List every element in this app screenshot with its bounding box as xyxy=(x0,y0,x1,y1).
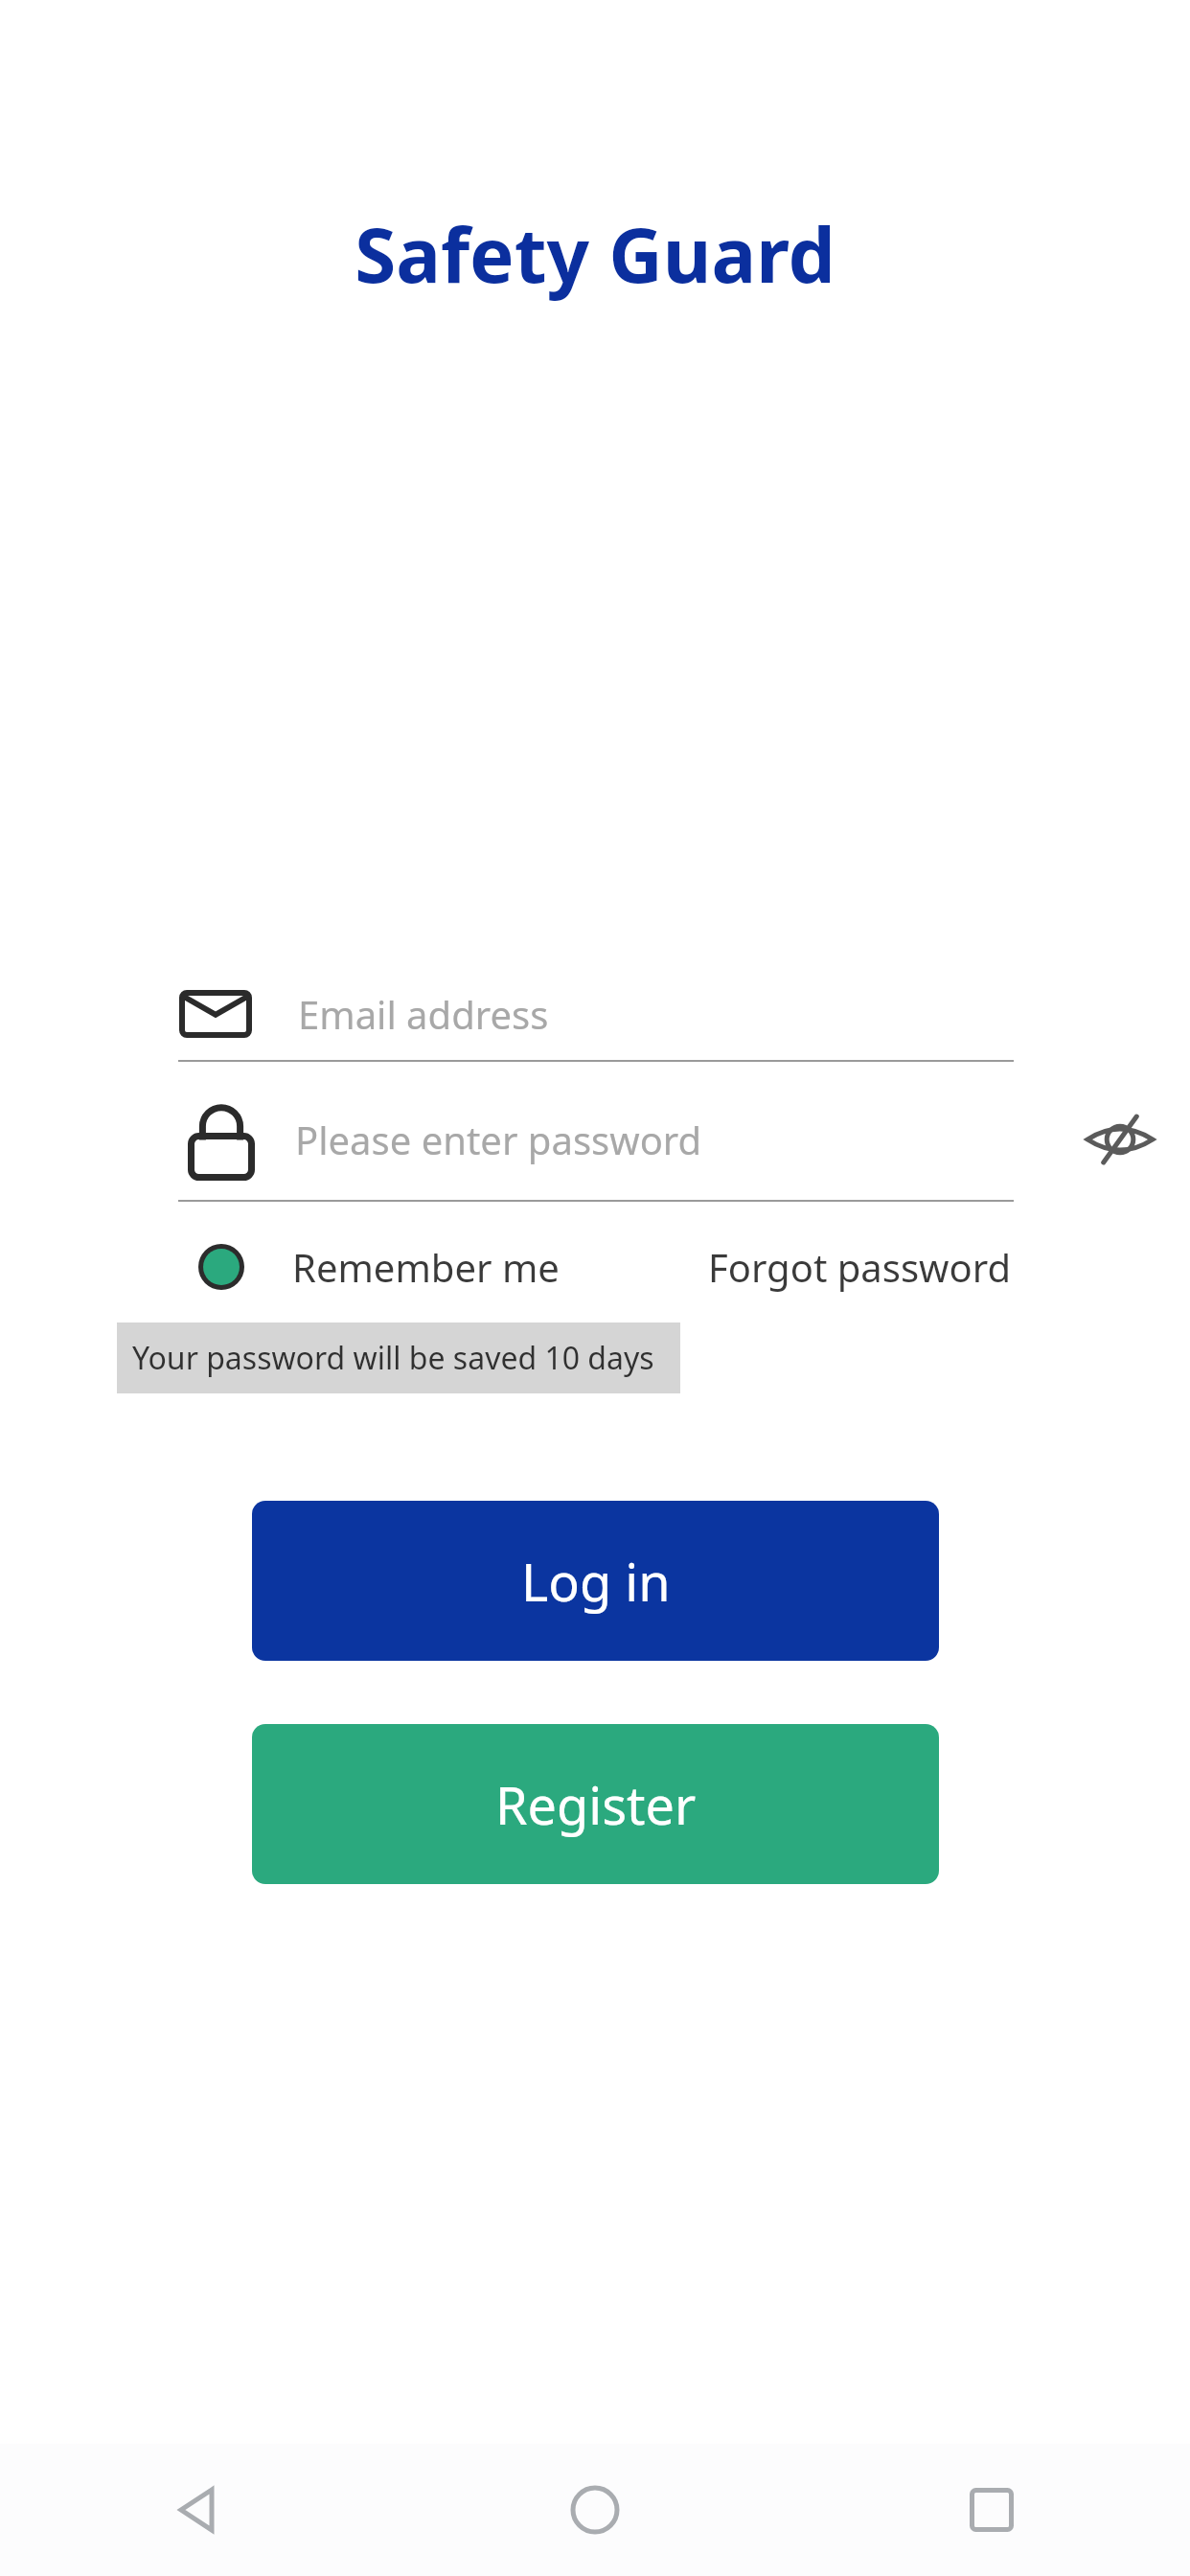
button[interactable]: Back xyxy=(0,2444,397,2576)
button[interactable]: Show password xyxy=(1067,1087,1173,1192)
staticText: Forgot password xyxy=(708,1241,1012,1293)
staticText: Safety Guard xyxy=(0,203,1190,305)
button[interactable]: Register xyxy=(252,1724,939,1884)
staticText: Email address xyxy=(298,988,549,1040)
button[interactable]: Log in xyxy=(252,1501,939,1661)
button[interactable]: Recent apps xyxy=(793,2444,1190,2576)
button[interactable]: Remember me xyxy=(0,1229,560,1305)
button[interactable]: Please enter password xyxy=(0,1079,1190,1200)
staticText: Register xyxy=(495,1769,697,1840)
button[interactable]: Forgot password xyxy=(708,1229,1012,1305)
staticText: Please enter password xyxy=(295,1114,702,1165)
button[interactable]: Email address xyxy=(0,968,1190,1060)
button[interactable]: Home xyxy=(397,2444,793,2576)
staticText: Your password will be saved 10 days xyxy=(132,1337,654,1379)
staticText: Log in xyxy=(521,1546,671,1617)
staticText: Remember me xyxy=(292,1241,560,1293)
